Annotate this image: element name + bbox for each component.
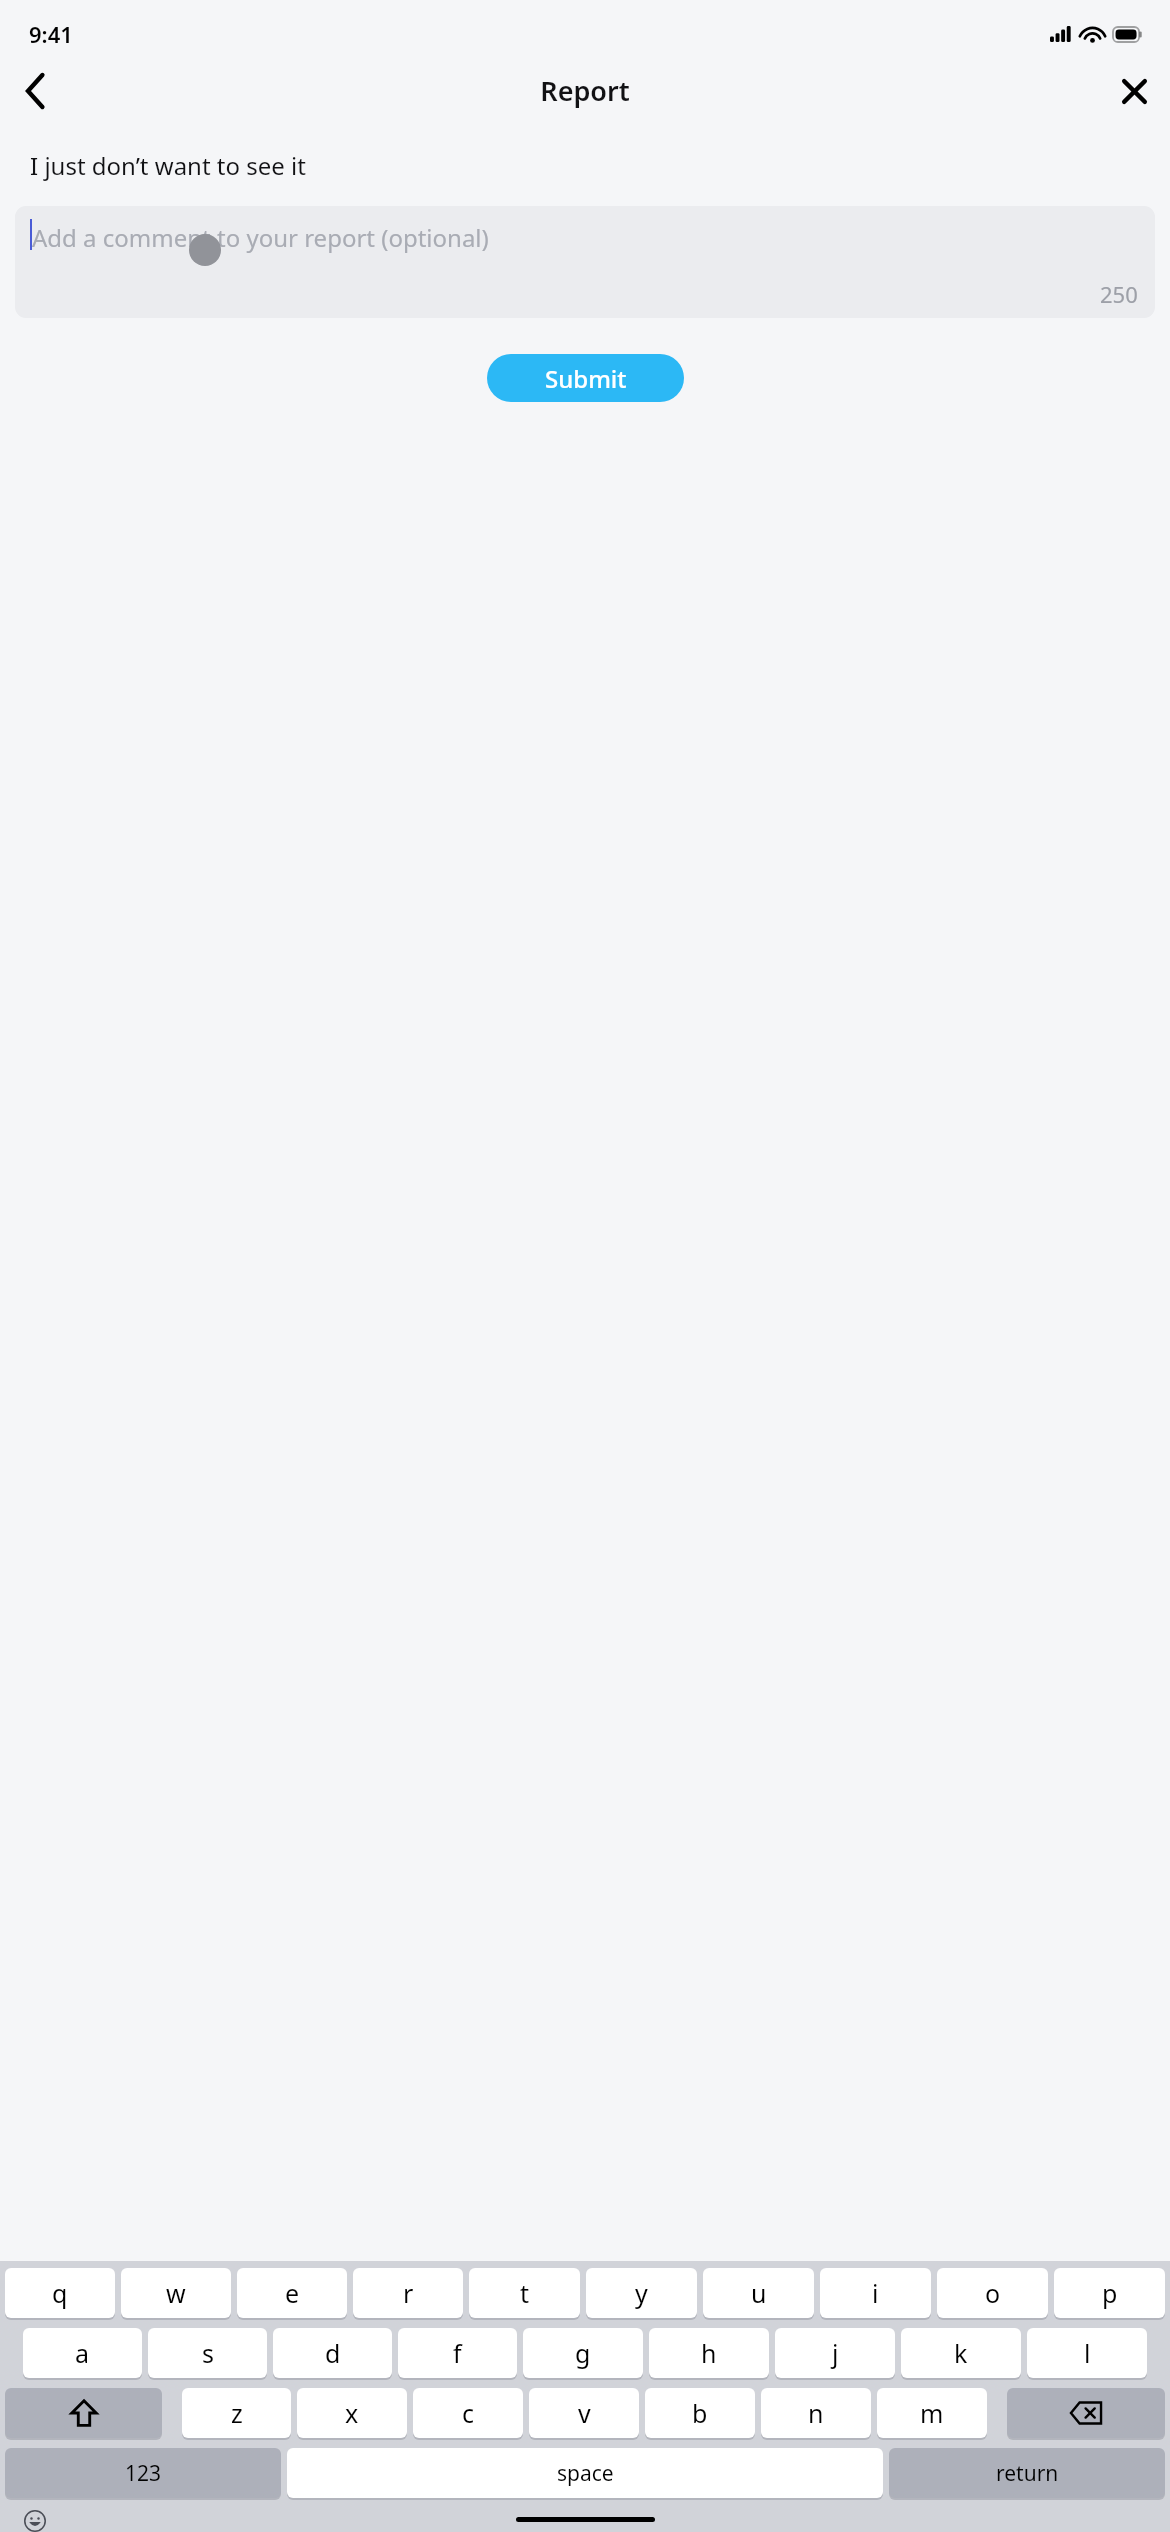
staticText: Add a comment to your report (optional) [32,221,489,254]
staticText: Report [540,72,630,109]
staticText: v [578,2396,591,2430]
button[interactable]: m [877,2388,987,2438]
staticText: m [920,2396,944,2430]
button[interactable]: 123 [5,2448,281,2498]
button[interactable]: a [23,2328,142,2378]
button[interactable]: p [1054,2268,1165,2318]
staticText: f [453,2336,462,2370]
button[interactable]: c [413,2388,523,2438]
staticText: c [462,2396,475,2430]
staticText: h [701,2336,717,2370]
staticText: I just don’t want to see it [30,149,306,182]
button[interactable]: b [645,2388,755,2438]
button[interactable]: t [469,2268,580,2318]
staticText: u [751,2276,767,2310]
staticText: e [285,2276,300,2310]
button[interactable]: l [1027,2328,1147,2378]
button[interactable]: Shift [5,2388,162,2438]
staticText: n [808,2396,824,2430]
button[interactable]: o [937,2268,1048,2318]
button[interactable]: j [775,2328,895,2378]
staticText: i [872,2276,879,2310]
button[interactable]: s [148,2328,267,2378]
button[interactable]: u [703,2268,814,2318]
staticText: z [231,2396,243,2430]
button[interactable]: space [287,2448,883,2498]
staticText: d [325,2336,341,2370]
staticText: 9:41 [29,19,73,49]
button[interactable]: v [529,2388,639,2438]
button[interactable]: return [889,2448,1165,2498]
staticText: q [52,2276,68,2310]
button[interactable]: w [121,2268,231,2318]
button[interactable]: i [820,2268,931,2318]
button[interactable]: Back [8,63,64,119]
staticText: return [996,2459,1059,2488]
button[interactable]: Close [1106,63,1162,119]
button[interactable]: n [761,2388,871,2438]
staticText: w [166,2276,186,2310]
staticText: j [832,2336,839,2370]
staticText: b [692,2396,708,2430]
button[interactable]: h [649,2328,769,2378]
staticText: p [1102,2276,1118,2310]
button[interactable]: Backspace [1007,2388,1165,2438]
staticText: x [345,2396,359,2430]
staticText: space [557,2459,614,2488]
button[interactable]: y [586,2268,697,2318]
staticText: 123 [125,2459,162,2488]
button[interactable]: d [273,2328,392,2378]
button[interactable]: z [182,2388,291,2438]
button[interactable]: q [5,2268,115,2318]
button[interactable]: k [901,2328,1021,2378]
button[interactable]: x [297,2388,407,2438]
button[interactable]: Emoji keyboard [19,2510,67,2532]
staticText: l [1084,2336,1091,2370]
staticText: g [575,2336,591,2370]
staticText: r [403,2276,414,2310]
staticText: a [75,2336,90,2370]
button[interactable]: r [353,2268,463,2318]
staticText: Submit [545,362,627,395]
staticText: 250 [1100,279,1138,309]
button[interactable]: Submit [487,354,684,402]
staticText: y [635,2276,648,2310]
button[interactable]: Add a comment to your report (optional) [15,206,1155,318]
button[interactable]: e [237,2268,347,2318]
staticText: o [985,2276,1001,2310]
button[interactable]: f [398,2328,517,2378]
staticText: t [520,2276,530,2310]
staticText: s [202,2336,214,2370]
staticText: k [954,2336,968,2370]
button[interactable]: g [523,2328,643,2378]
